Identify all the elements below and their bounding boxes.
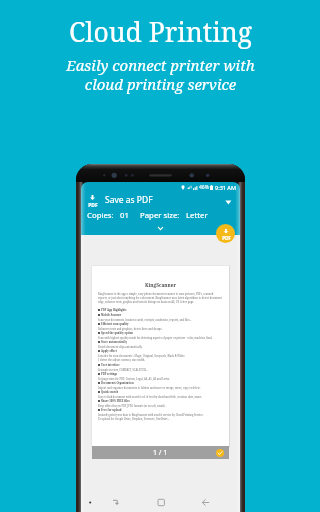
staticText: Instantly print your data to KingScanner… [98,413,223,421]
staticText: Quick search [101,390,119,394]
staticText: PDF [222,235,231,240]
staticText: Free for upload [101,408,122,412]
staticText: Copies: [87,210,114,221]
staticText: Finish document clips automatically. [98,345,223,348]
staticText: Paper size: [140,210,180,221]
staticText: User interface [101,363,120,367]
staticText: Scan your documents, business cards, rec… [98,318,223,321]
staticText: 01 [120,210,129,221]
staticText: Apply effect [101,349,117,353]
staticText: Store automatically [101,340,127,344]
button[interactable]: Done [216,449,224,457]
other: Navigation bar [81,494,240,508]
staticText: 1 / 1 [153,448,168,458]
staticText: Cloud Printing [69,14,252,50]
staticText: Keep offers they in PDF, JPEG formats (o… [98,404,223,407]
staticText: Save as PDF [105,194,153,206]
staticText: PDF App Highlights [101,308,127,312]
button[interactable]: PDF [81,192,240,208]
button[interactable]: Expand [222,194,234,206]
button[interactable]: More options [81,222,240,235]
staticText: Share 100% FREE files [101,399,130,403]
button[interactable]: Save as PDF [216,224,235,243]
staticText: Documents Organization [101,381,134,385]
staticText: Easy to find document with search tool o… [98,395,223,398]
staticText: Set page sizes for PDF: Custom, Legal, A… [98,377,223,380]
staticText: 46% [199,184,209,191]
staticText: A simple in view, COMPACT, SCALEFULL. [98,368,223,371]
staticText: Efficient scan quality [101,322,129,326]
staticText: 9:31 AM [215,184,237,191]
staticText: Import and organize documents to folders… [98,386,223,389]
staticText: PDF [88,202,98,207]
staticText: KingScanner [98,282,223,289]
staticText: Easily connect printer with cloud printi… [66,55,255,94]
staticText: 4 modes for scan documents : Magic, Orig… [98,354,223,362]
staticText: KingScanner is the app a simple, easy ph… [98,292,223,304]
staticText: PDF settings [101,372,118,376]
staticText: Mobile Scanner [101,313,122,317]
staticText: Letter [186,210,208,221]
staticText: Speed the quality option [101,331,134,335]
staticText: Enhances texts and graphics, detect line… [98,327,223,330]
staticText: Scan with highest quality mode for detec… [98,336,223,339]
